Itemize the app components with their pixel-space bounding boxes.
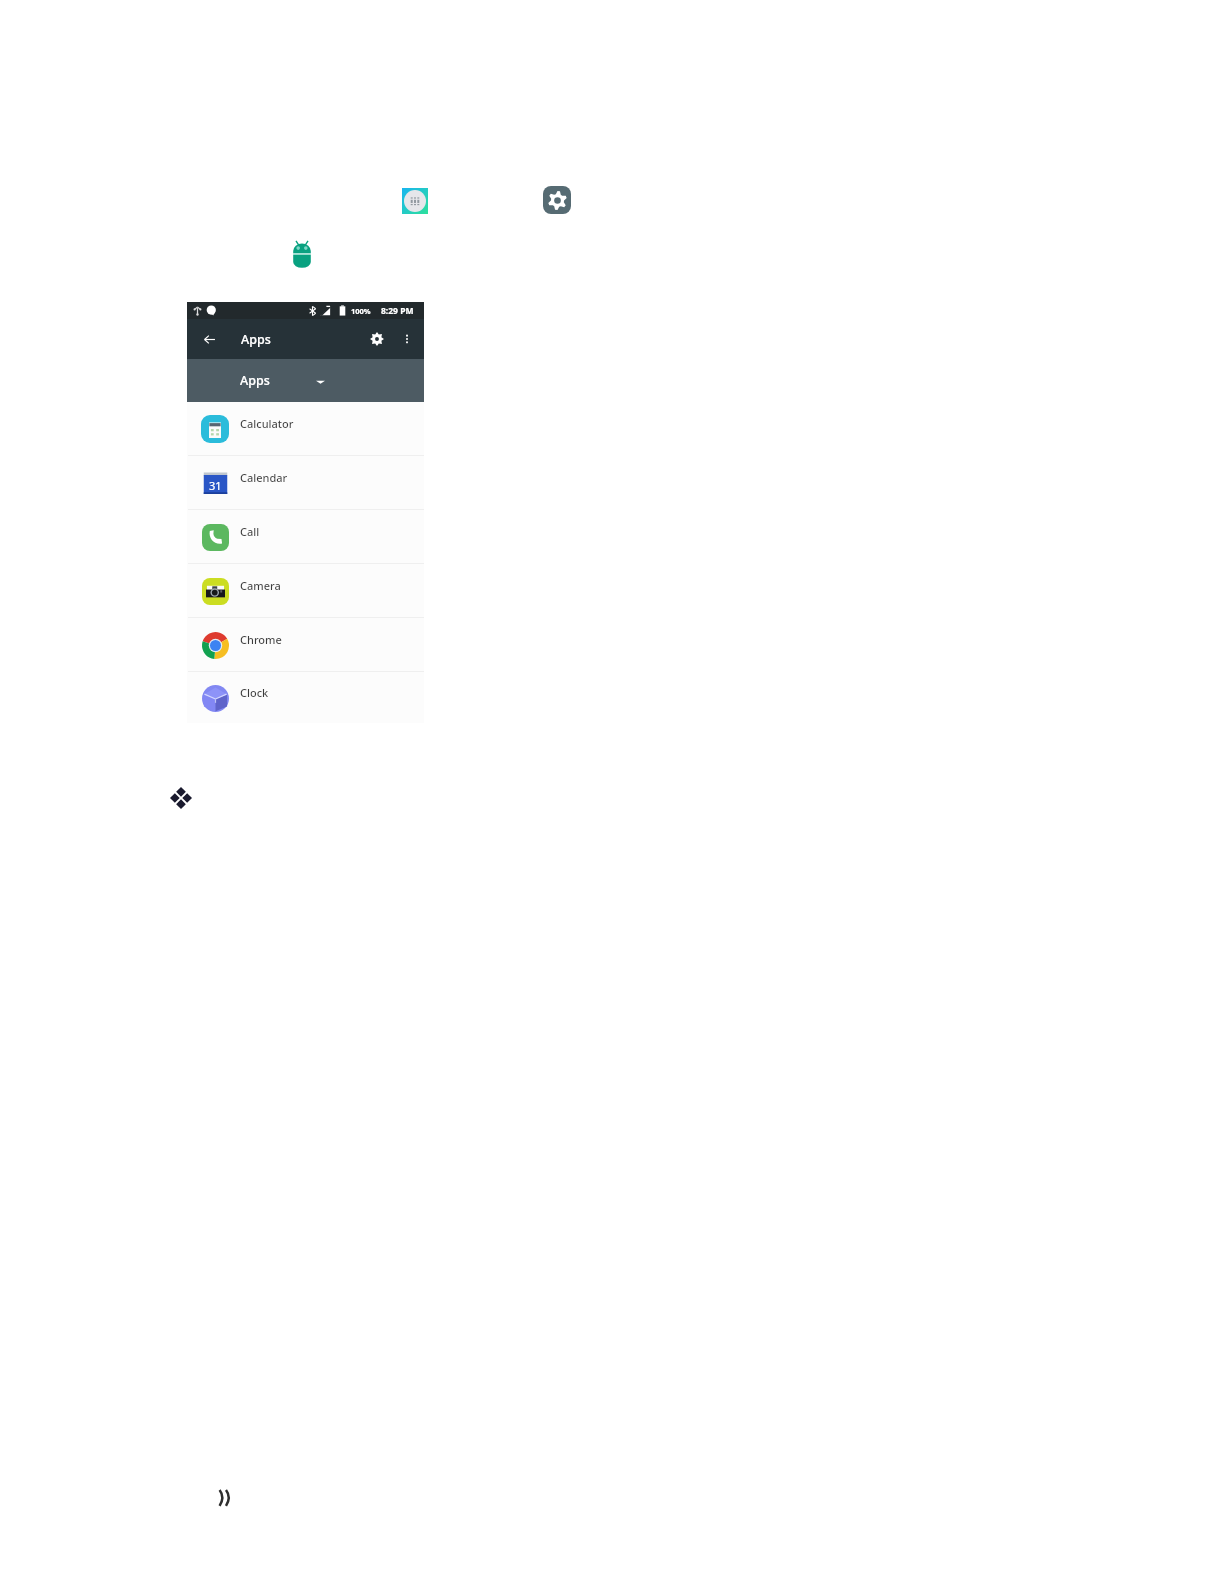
button[interactable]: Expand	[170, 787, 192, 809]
staticText: Camera	[240, 578, 281, 593]
staticText: Chrome	[240, 632, 282, 647]
button[interactable]: Call	[187, 510, 424, 564]
staticText: Clock	[240, 685, 269, 700]
staticText: 100%	[351, 306, 371, 316]
button[interactable]: 31	[187, 456, 424, 510]
staticText: Apps	[240, 372, 270, 389]
button[interactable]: More options	[393, 325, 421, 353]
button[interactable]: Calculator	[187, 402, 424, 456]
staticText: Calendar	[240, 470, 288, 485]
button[interactable]: Apps	[187, 359, 424, 402]
button[interactable]: Apps	[402, 188, 428, 214]
staticText: Call	[240, 524, 260, 539]
staticText: Apps	[241, 331, 271, 348]
button[interactable]: Next	[218, 1487, 234, 1509]
button[interactable]: Chrome	[187, 618, 424, 672]
button[interactable]: Camera	[187, 564, 424, 618]
staticText: 8:29 PM	[381, 305, 414, 317]
staticText: Calculator	[240, 416, 294, 431]
button[interactable]: Settings	[363, 325, 391, 353]
button[interactable]: Settings	[543, 186, 571, 214]
button[interactable]: Back	[195, 325, 223, 353]
button[interactable]: Clock	[187, 672, 424, 723]
staticText: 31	[209, 478, 222, 493]
button[interactable]: Android	[292, 240, 312, 269]
